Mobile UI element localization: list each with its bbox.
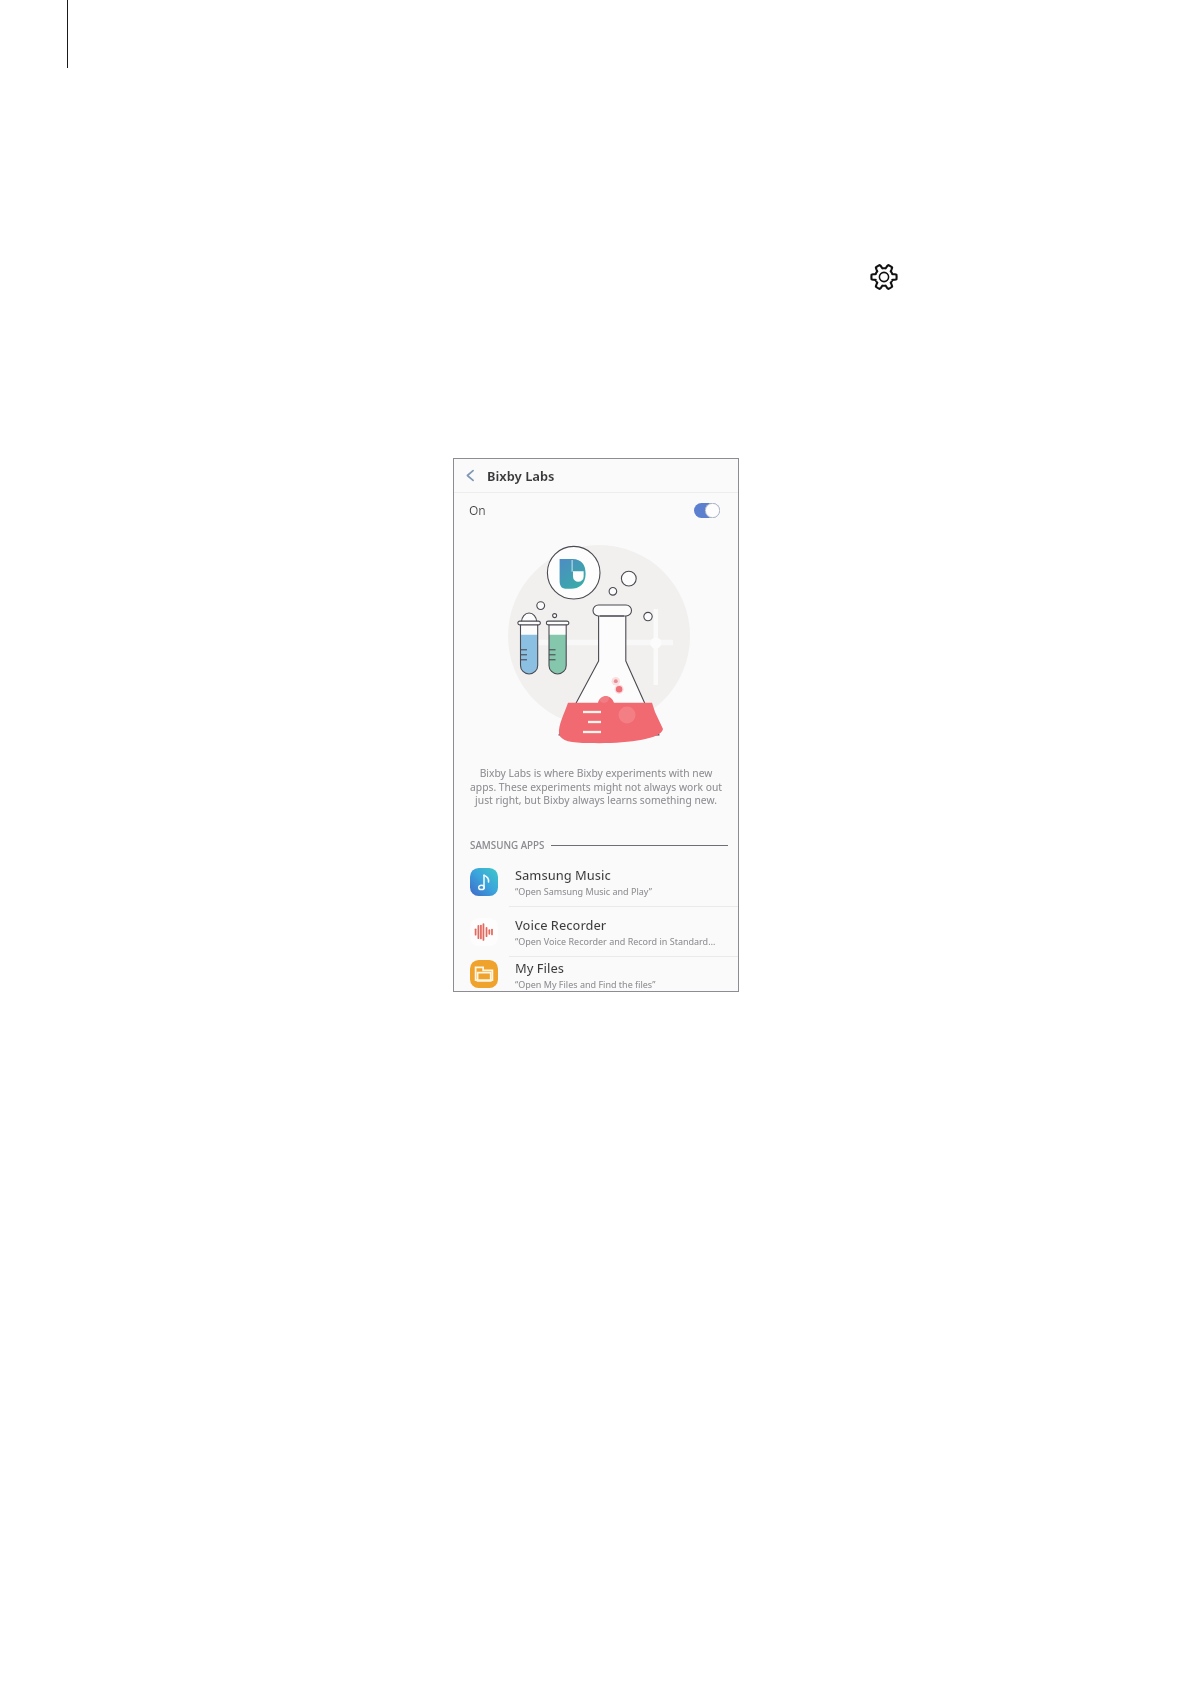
button[interactable]: Navigate up <box>454 459 487 492</box>
button[interactable]: Samsung Music <box>454 857 738 906</box>
staticText: On <box>469 502 486 518</box>
button[interactable]: My Files <box>454 957 738 991</box>
staticText: Bixby Labs <box>487 467 555 484</box>
staticText: Bixby Labs is where Bixby experiments wi… <box>462 766 730 807</box>
staticText: “Open Samsung Music and Play” <box>515 885 652 897</box>
staticText: Samsung Music <box>515 866 611 883</box>
staticText: Voice Recorder <box>515 916 607 933</box>
staticText: SAMSUNG APPS <box>470 839 545 852</box>
button[interactable]: On <box>469 493 720 527</box>
button[interactable]: Voice Recorder <box>454 907 738 956</box>
staticText: My Files <box>515 959 565 976</box>
staticText: “Open Voice Recorder and Record in Stand… <box>515 935 716 947</box>
staticText: “Open My Files and Find the files” <box>515 978 656 990</box>
button[interactable]: Settings <box>870 263 898 291</box>
